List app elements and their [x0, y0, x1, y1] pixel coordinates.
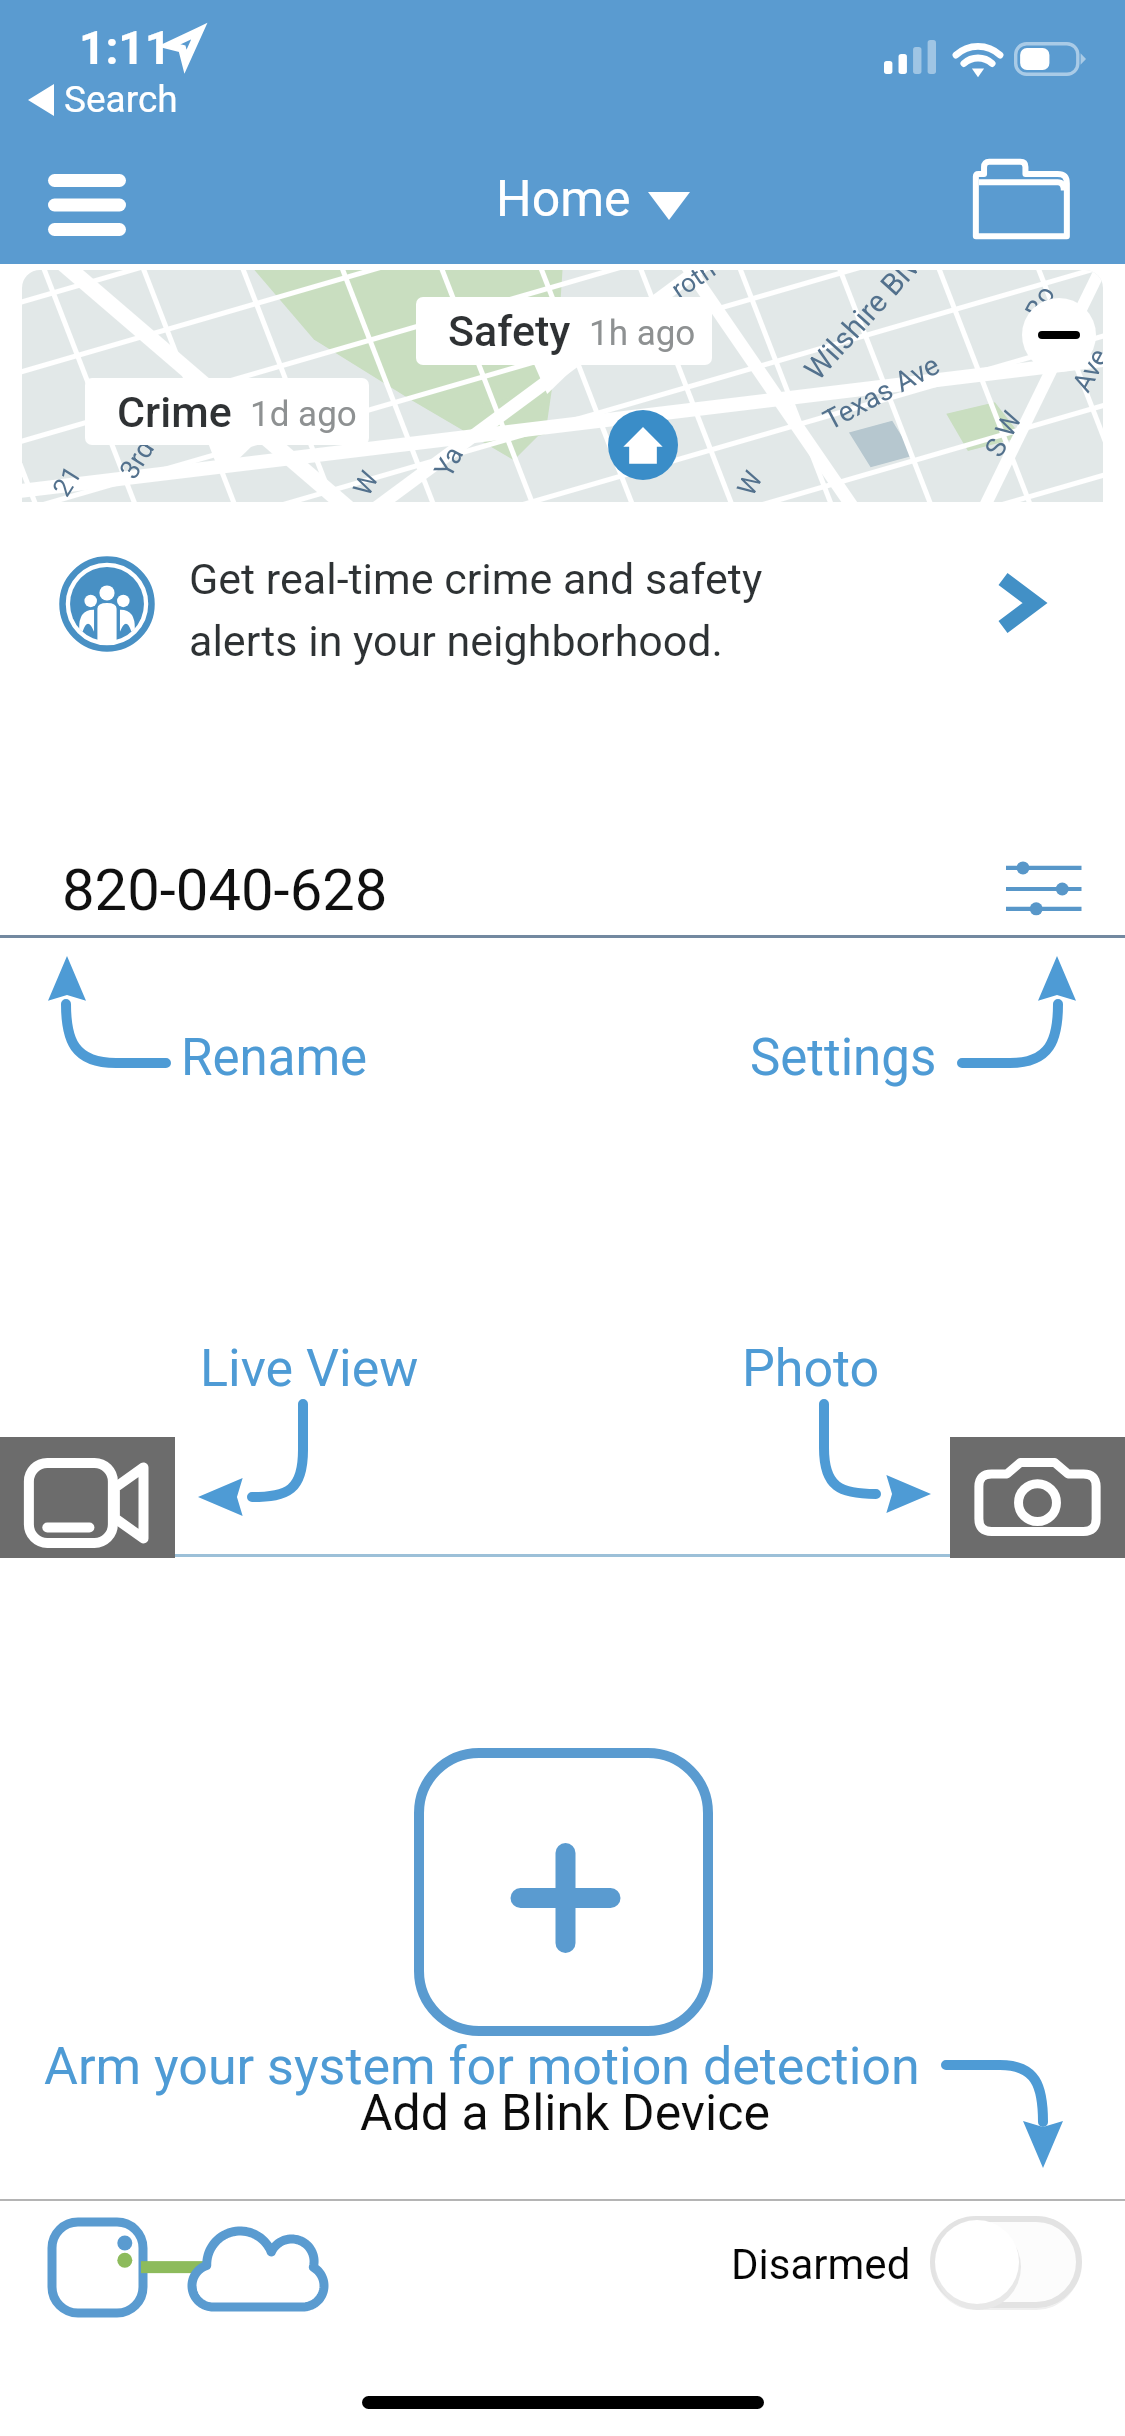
staticText: Ya: [428, 441, 470, 483]
button[interactable]: Arm your system for motion detection: [44, 2036, 920, 2097]
button[interactable]: Add a Blink Device: [414, 1748, 713, 2036]
button[interactable]: Live View: [0, 1437, 175, 1558]
staticText: Rename: [181, 1028, 368, 1088]
staticText: Add a Blink Device: [360, 2084, 770, 2143]
button[interactable]: Crime: [85, 378, 369, 445]
button[interactable]: Menu: [28, 152, 142, 248]
staticText: W: [347, 465, 385, 501]
button[interactable]: Disarmed: [731, 2240, 911, 2289]
staticText: Live View: [200, 1338, 419, 1399]
staticText: 1h ago: [589, 313, 696, 354]
staticText: W: [731, 465, 769, 501]
staticText: Search: [64, 78, 178, 121]
button[interactable]: Device settings: [1000, 858, 1088, 920]
staticText: Arm your system for motion detection: [44, 2036, 920, 2097]
staticText: Safety: [448, 306, 571, 356]
button[interactable]: Back to Search: [64, 78, 178, 121]
button[interactable]: Photo: [742, 1338, 880, 1399]
button[interactable]: Wilshire Blvd: [22, 270, 1103, 718]
staticText: 3rd St: [113, 407, 178, 485]
staticText: Ave: [1066, 343, 1103, 397]
button[interactable]: Home: [480, 162, 680, 242]
button[interactable]: Sync module status: [44, 2218, 334, 2314]
button[interactable]: Settings: [750, 1028, 937, 1088]
button[interactable]: Zoom out: [1022, 298, 1096, 372]
staticText: 1:11: [79, 21, 172, 75]
staticText: 1d ago: [250, 394, 357, 435]
staticText: Get real-time crime and safety: [189, 554, 763, 604]
staticText: roth: [666, 270, 721, 305]
staticText: Crime: [117, 387, 232, 437]
staticText: Texas Ave: [818, 348, 945, 437]
staticText: alerts in your neighborhood.: [189, 616, 723, 666]
staticText: Photo: [742, 1338, 880, 1399]
staticText: Home: [496, 170, 631, 229]
staticText: Settings: [750, 1028, 937, 1088]
button[interactable]: Rename: [181, 1028, 368, 1088]
staticText: 820-040-628: [62, 856, 388, 924]
button[interactable]: Photo: [950, 1437, 1125, 1558]
button[interactable]: 820-040-628: [62, 856, 388, 924]
button[interactable]: Add a Blink Device: [360, 2084, 770, 2143]
button[interactable]: Live View: [200, 1338, 419, 1399]
button[interactable]: Your home: [608, 410, 678, 480]
button[interactable]: Safety: [416, 297, 712, 365]
staticText: Wilshire Blvd: [797, 270, 938, 387]
staticText: 21: [46, 460, 88, 502]
staticText: Disarmed: [731, 2240, 911, 2289]
staticText: S W: [978, 406, 1029, 462]
button[interactable]: Arm system toggle: [930, 2216, 1082, 2308]
staticText: Bo: [1019, 280, 1062, 324]
button[interactable]: Folder: [957, 153, 1087, 246]
